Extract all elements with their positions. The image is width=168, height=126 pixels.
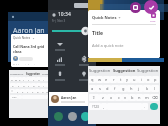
button[interactable]: i xyxy=(41,77,46,81)
button[interactable]: ?123 xyxy=(10,95,18,99)
button[interactable]: ⌫ xyxy=(50,89,56,93)
button[interactable]: r xyxy=(110,76,117,83)
button[interactable]: b xyxy=(129,94,136,101)
staticText: m xyxy=(145,95,149,100)
button[interactable]: n xyxy=(40,89,45,93)
button[interactable]: t xyxy=(117,76,124,83)
button[interactable]: Notes xyxy=(130,2,141,13)
button[interactable]: p xyxy=(152,76,159,83)
button[interactable]: z xyxy=(99,94,107,101)
button[interactable]: Suggestion xyxy=(25,70,41,76)
staticText: ⌫ xyxy=(152,95,158,100)
button[interactable]: h xyxy=(36,83,41,87)
button[interactable]: w xyxy=(96,76,103,83)
button[interactable]: d xyxy=(103,85,111,92)
button[interactable]: g xyxy=(119,85,127,92)
button[interactable]: Suggestion xyxy=(136,66,160,75)
button[interactable]: t xyxy=(26,77,31,81)
button[interactable]: Quick Notes xyxy=(11,34,55,67)
button[interactable]: a xyxy=(89,85,96,92)
button[interactable]: Suggestion xyxy=(9,70,25,76)
button[interactable]: m xyxy=(45,89,50,93)
staticText: j xyxy=(43,84,44,87)
button[interactable]: Enter xyxy=(50,95,55,99)
button[interactable]: e xyxy=(18,77,22,81)
button[interactable]: Airplane xyxy=(72,53,96,68)
button[interactable]: v xyxy=(30,89,35,93)
button[interactable]: ⇧ xyxy=(10,89,15,93)
button[interactable]: x xyxy=(20,89,25,93)
button[interactable]: Location xyxy=(72,68,96,83)
button[interactable]: o xyxy=(46,77,51,81)
button[interactable]: Wi-Fi xyxy=(48,38,72,53)
button[interactable]: Enter xyxy=(150,103,158,110)
button[interactable]: x xyxy=(107,94,115,101)
button[interactable]: ?123 xyxy=(89,103,101,110)
button[interactable]: b xyxy=(35,89,40,93)
button[interactable]: ⇧ xyxy=(89,94,99,101)
button[interactable]: j xyxy=(135,85,143,92)
button[interactable]: , xyxy=(101,103,107,110)
button[interactable]: y xyxy=(124,76,131,83)
staticText: Suggestion xyxy=(89,68,111,73)
button[interactable]: e xyxy=(103,76,110,83)
button[interactable]: c xyxy=(25,89,30,93)
button[interactable]: z xyxy=(15,89,20,93)
staticText: j xyxy=(138,86,140,91)
button[interactable]: Quick Notes xyxy=(88,10,160,58)
button[interactable]: Suggestion xyxy=(112,66,136,75)
button[interactable]: c xyxy=(115,94,122,101)
button[interactable]: q xyxy=(10,77,14,81)
button[interactable]: j xyxy=(41,83,46,87)
button[interactable]: Torch xyxy=(48,68,72,83)
button[interactable]: Aaron Jan xyxy=(49,92,95,106)
button[interactable]: y xyxy=(31,77,36,81)
staticText: e xyxy=(19,78,21,81)
button[interactable]: l xyxy=(151,85,159,92)
button[interactable]: q xyxy=(89,76,96,83)
button[interactable]: v xyxy=(122,94,129,101)
staticText: l xyxy=(154,86,156,91)
button[interactable]: Suggestion xyxy=(41,70,57,76)
button[interactable]: s xyxy=(16,83,21,87)
button[interactable]: f xyxy=(26,83,31,87)
staticText: u xyxy=(38,78,40,81)
button[interactable]: n xyxy=(136,94,143,101)
button[interactable]: ⌫ xyxy=(150,94,159,101)
button[interactable]: d xyxy=(21,83,26,87)
button[interactable]: Data xyxy=(48,53,72,68)
button[interactable]: u xyxy=(36,77,41,81)
button[interactable]: i xyxy=(138,76,145,83)
button[interactable]: Done xyxy=(144,0,158,14)
staticText: g xyxy=(33,84,35,87)
button[interactable]: s xyxy=(96,85,103,92)
button[interactable]: k xyxy=(46,83,51,87)
button[interactable]: f xyxy=(111,85,119,92)
button[interactable]: h xyxy=(127,85,135,92)
staticText: q xyxy=(91,77,94,82)
button[interactable]: r xyxy=(22,77,26,81)
button[interactable]: o xyxy=(145,76,152,83)
button[interactable]: Suggestion xyxy=(88,66,112,75)
staticText: v xyxy=(124,95,127,100)
button[interactable] xyxy=(72,38,96,53)
button[interactable]: p xyxy=(51,77,56,81)
staticText: Suggestion xyxy=(137,68,159,73)
button[interactable]: . xyxy=(142,103,148,110)
button[interactable]: App xyxy=(68,112,77,121)
button[interactable]: m xyxy=(143,94,150,101)
button[interactable]: k xyxy=(143,85,151,92)
button[interactable]: . xyxy=(45,95,49,99)
staticText: n xyxy=(42,90,44,93)
button[interactable]: App xyxy=(54,112,63,121)
button[interactable]: g xyxy=(31,83,36,87)
button[interactable]: a xyxy=(10,83,16,87)
button[interactable]: w xyxy=(14,77,18,81)
button[interactable]: u xyxy=(131,76,138,83)
button[interactable]: App xyxy=(81,112,90,121)
